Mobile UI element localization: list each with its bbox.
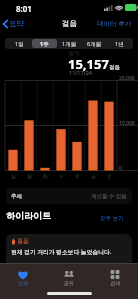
staticText: 현재 걷기 거리가 평소보다 늘었습니다.: [11, 248, 112, 256]
button[interactable]: 요약: [1, 17, 26, 30]
button[interactable]: 공유: [46, 267, 92, 286]
staticText: 15,157: [68, 55, 109, 73]
button[interactable]: 요약: [0, 267, 46, 286]
staticText: 걸음: [17, 237, 29, 245]
button[interactable]: 추세: [6, 188, 132, 204]
button[interactable]: 1년: [107, 39, 132, 48]
other: 공유: [63, 269, 75, 280]
button[interactable]: 1주: [32, 39, 57, 48]
other: 검색: [109, 269, 121, 280]
staticText: 0: [119, 165, 122, 172]
staticText: 검색: [110, 280, 120, 286]
staticText: 추세: [11, 193, 22, 200]
staticText: 8:01: [16, 3, 32, 14]
staticText: 걸음: [62, 19, 77, 28]
staticText: 20,000: [119, 75, 135, 82]
button[interactable]: 걸음: [6, 234, 132, 274]
staticText: 월: [27, 173, 32, 179]
staticText: 하이라이트: [6, 210, 51, 221]
staticText: 1주: [40, 40, 49, 48]
button[interactable]: 1일: [6, 39, 32, 48]
other: 요약: [17, 269, 29, 280]
staticText: 걸음: [109, 64, 120, 71]
staticText: 금: [91, 173, 96, 179]
button[interactable]: 검색: [92, 267, 138, 286]
staticText: 계산할 수 없음: [91, 192, 127, 200]
staticText: 일: [11, 173, 16, 179]
staticText: 화: [43, 173, 48, 179]
staticText: 목: [75, 173, 80, 179]
staticText: 6개월: [87, 40, 102, 48]
staticText: 공유: [64, 280, 74, 286]
staticText: 1일: [15, 40, 24, 48]
staticText: 1개월: [62, 40, 77, 48]
staticText: 요약: [9, 19, 24, 28]
staticText: 11/17/24: [69, 69, 92, 76]
staticText: 10,000: [119, 120, 135, 127]
staticText: 요약: [18, 280, 28, 286]
staticText: 1년: [115, 40, 124, 48]
staticText: 합계: [69, 50, 79, 56]
button[interactable]: 데이터 추가: [93, 17, 136, 30]
button[interactable]: 모두 보기: [98, 213, 126, 223]
staticText: 토: [107, 173, 112, 179]
button[interactable]: 6개월: [82, 39, 107, 48]
staticText: 수: [59, 173, 64, 179]
button[interactable]: 1개월: [57, 39, 82, 48]
